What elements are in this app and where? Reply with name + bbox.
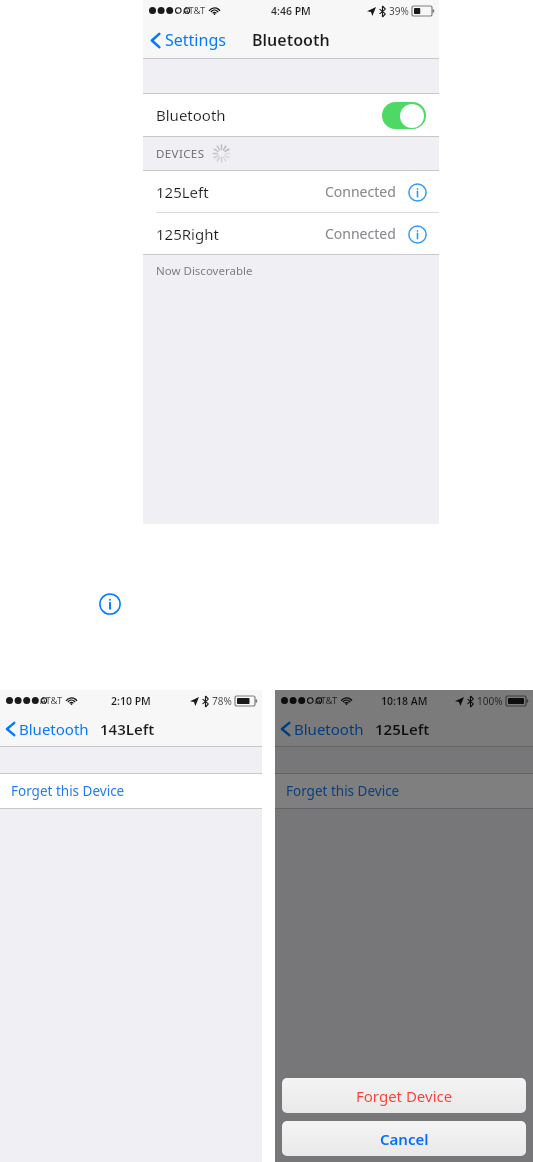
button[interactable]: Settings [151, 29, 226, 51]
staticText: Forget Device [356, 1086, 453, 1106]
staticText: 143Left [100, 719, 155, 739]
staticText: Cancel [380, 1129, 429, 1149]
button[interactable]: 125Right [143, 213, 439, 254]
staticText: 2:10 PM [111, 694, 151, 708]
staticText: 39% [389, 4, 409, 18]
staticText: Bluetooth [294, 719, 364, 739]
staticText: 125Left [156, 182, 209, 202]
button[interactable]: Forget this Device [0, 774, 262, 808]
button[interactable]: Forget this Device [275, 774, 533, 808]
staticText: Forget this Device [286, 782, 400, 800]
staticText: 4:46 PM [271, 4, 311, 18]
staticText: Settings [165, 29, 226, 51]
staticText: Now Discoverable [156, 263, 253, 279]
staticText: Connected [325, 224, 396, 243]
button[interactable]: More info about 125Left [406, 181, 428, 203]
staticText: Bluetooth [156, 105, 226, 125]
staticText: DEVICES [156, 146, 205, 162]
staticText: Bluetooth [252, 29, 330, 51]
staticText: AT&T [315, 694, 338, 707]
staticText: Forget this Device [11, 782, 125, 800]
staticText: 10:18 AM [381, 694, 428, 708]
staticText: Bluetooth [19, 719, 89, 739]
button[interactable]: Bluetooth [281, 719, 364, 739]
button[interactable]: Bluetooth [6, 719, 89, 739]
button[interactable] [382, 102, 426, 129]
staticText: 78% [212, 694, 232, 708]
button[interactable]: 125Left [143, 171, 439, 212]
staticText: 125Right [156, 224, 219, 244]
button[interactable]: Forget Device [282, 1078, 526, 1113]
staticText: Connected [325, 182, 396, 201]
staticText: 125Left [375, 719, 430, 739]
button[interactable]: Cancel [282, 1121, 526, 1156]
staticText: AT&T [183, 4, 206, 17]
button[interactable]: More info about 125Right [406, 223, 428, 245]
staticText: 100% [477, 694, 503, 708]
button[interactable]: Info [98, 592, 122, 616]
staticText: AT&T [40, 694, 63, 707]
button[interactable]: Bluetooth [143, 94, 439, 136]
